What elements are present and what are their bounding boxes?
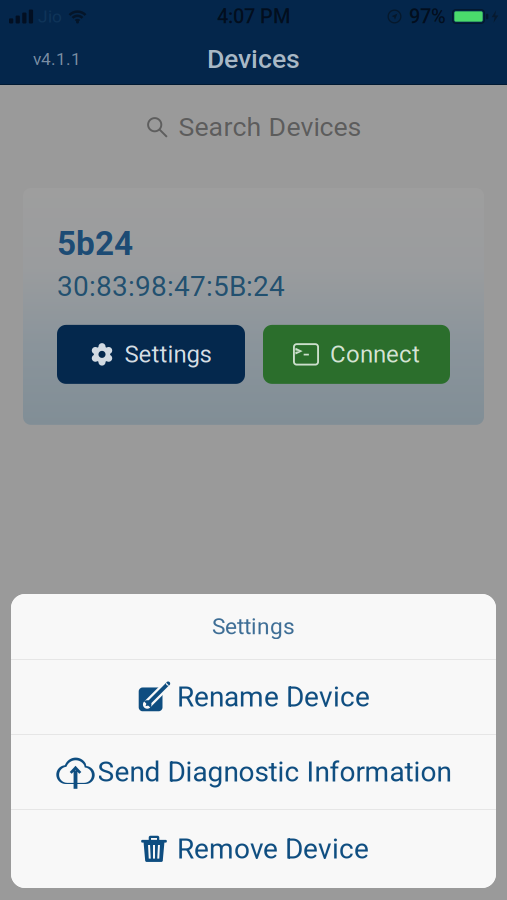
staticText: Devices	[207, 43, 300, 75]
staticText: Connect	[330, 340, 420, 368]
staticText: Remove Device	[177, 833, 369, 865]
staticText: Jio	[38, 6, 62, 27]
staticText: v4.1.1	[33, 49, 81, 69]
staticText: Settings	[212, 613, 295, 640]
button[interactable]: Settings	[57, 325, 245, 384]
staticText: Send Diagnostic Information	[97, 756, 451, 788]
staticText: 5b24	[57, 224, 133, 263]
staticText: 97%	[409, 5, 446, 28]
staticText: 4:07 PM	[217, 5, 290, 28]
staticText: 30:83:98:47:5B:24	[57, 270, 285, 303]
button[interactable]: Connect	[263, 325, 450, 384]
button[interactable]: Search Devices	[0, 99, 507, 155]
staticText: Search Devices	[178, 111, 361, 143]
staticText: Settings	[124, 340, 211, 368]
button[interactable]: Remove Device	[11, 810, 496, 888]
button[interactable]: Rename Device	[11, 660, 496, 734]
button[interactable]: Send Diagnostic Information	[11, 735, 496, 809]
staticText: Rename Device	[177, 681, 370, 713]
